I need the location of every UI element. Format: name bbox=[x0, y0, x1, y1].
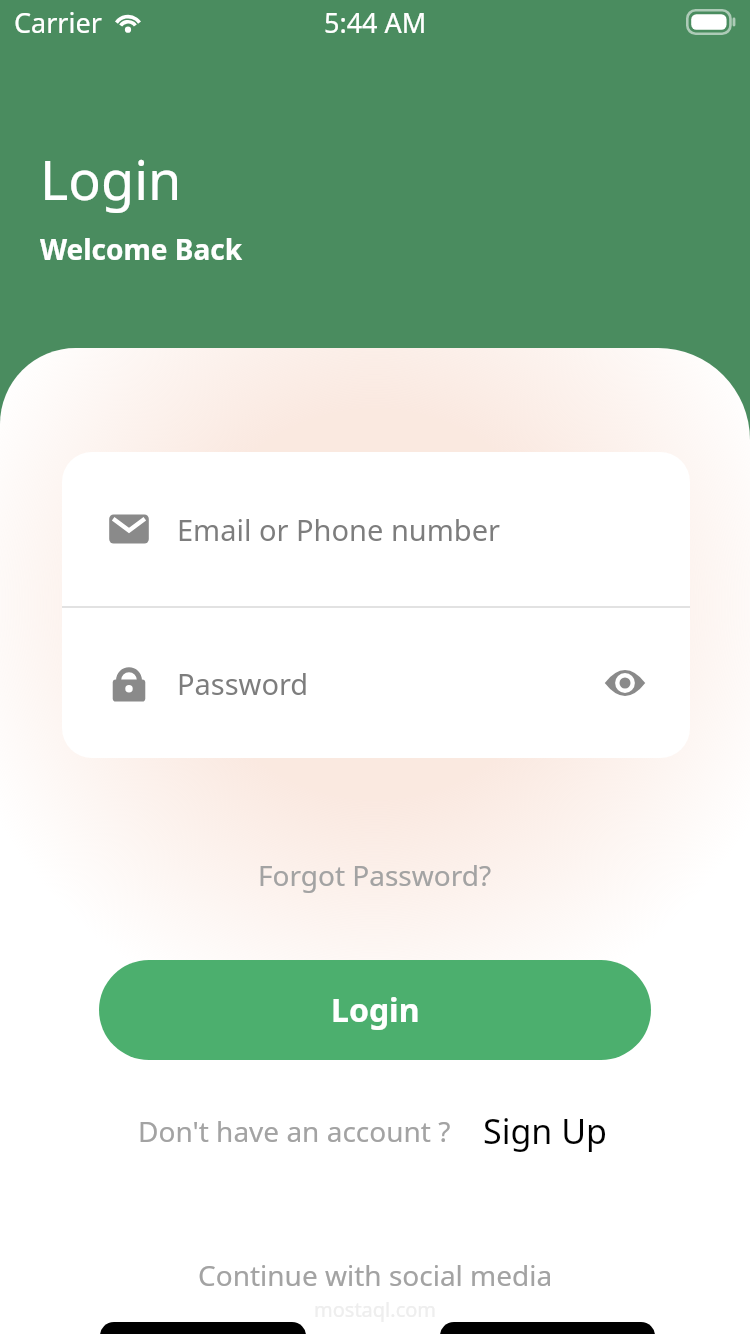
staticText: Don't have an account ? bbox=[138, 1112, 451, 1150]
button[interactable]: Forgot Password? bbox=[238, 846, 512, 904]
button[interactable]: Continue with Google bbox=[440, 1322, 655, 1334]
button[interactable]: Continue with Facebook bbox=[100, 1322, 306, 1334]
button[interactable]: Password bbox=[62, 608, 690, 758]
button[interactable]: Login bbox=[99, 960, 651, 1060]
staticText: Carrier bbox=[14, 4, 102, 41]
staticText: 5:44 AM bbox=[324, 4, 427, 41]
staticText: Password bbox=[177, 664, 309, 703]
staticText: mostaql.com bbox=[314, 1296, 437, 1323]
staticText: Sign Up bbox=[483, 1108, 607, 1154]
staticText: Login bbox=[40, 142, 182, 216]
staticText: Welcome Back bbox=[40, 230, 243, 268]
staticText: Forgot Password? bbox=[258, 856, 492, 894]
button[interactable]: Sign Up bbox=[477, 1100, 613, 1162]
staticText: Continue with social media bbox=[198, 1256, 553, 1294]
button[interactable]: Show password bbox=[598, 656, 652, 710]
staticText: Email or Phone number bbox=[177, 510, 501, 549]
button[interactable]: Email or Phone number bbox=[62, 452, 690, 606]
staticText: Login bbox=[331, 988, 420, 1032]
